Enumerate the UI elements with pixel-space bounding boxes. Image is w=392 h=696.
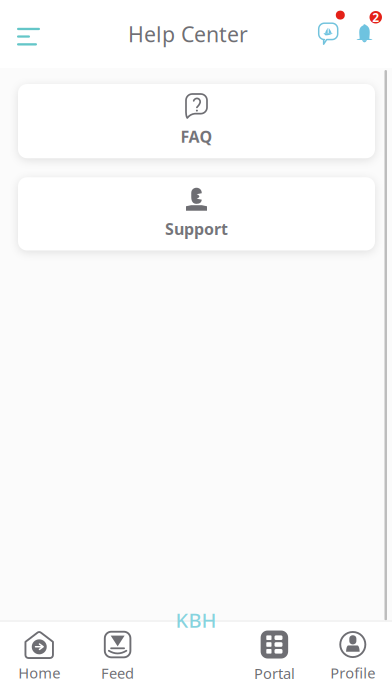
staticText: FAQ (180, 126, 212, 147)
staticText: KBH (175, 607, 216, 633)
staticText: Portal (254, 663, 295, 683)
button[interactable]: Notifications (349, 0, 385, 44)
staticText: Home (18, 663, 60, 682)
button[interactable]: Home (0, 631, 78, 682)
button[interactable]: Messages (316, 0, 352, 44)
staticText: 2 (372, 9, 379, 25)
staticText: Help Center (128, 20, 248, 48)
button[interactable]: Feed (78, 631, 157, 683)
staticText: Support (165, 218, 228, 239)
staticText: Profile (330, 663, 375, 682)
button[interactable]: Support (18, 177, 375, 250)
staticText: Feed (101, 663, 134, 683)
button[interactable]: Profile (314, 631, 392, 682)
button[interactable]: Menu (0, 0, 44, 44)
button[interactable]: FAQ (18, 84, 375, 158)
button[interactable]: Portal (235, 630, 314, 683)
